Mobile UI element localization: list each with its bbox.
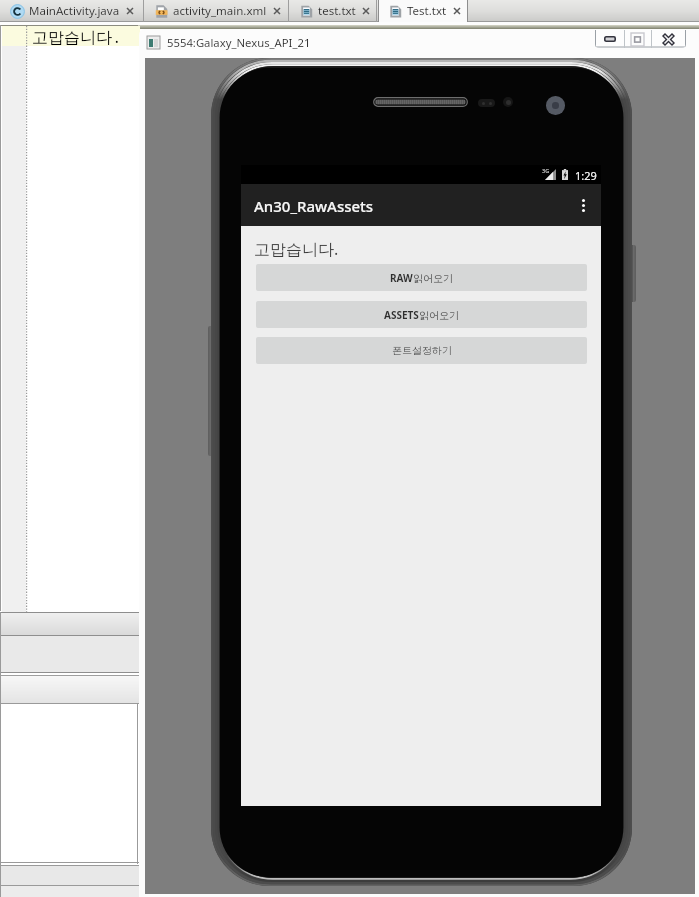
staticText: 고맙습니다. — [32, 26, 122, 48]
staticText: 1:29 — [575, 168, 597, 183]
button[interactable]: test.txt — [289, 0, 377, 22]
button[interactable]: RAW — [256, 264, 587, 291]
button[interactable]: MainActivity.java — [0, 0, 144, 22]
button[interactable]: Minimise — [595, 30, 624, 48]
staticText: 3G — [542, 167, 550, 174]
button[interactable]: More options — [565, 184, 601, 226]
staticText: 읽어오기 — [419, 309, 459, 322]
staticText: RAW — [390, 271, 413, 285]
button[interactable]: 폰트설정하기 — [256, 337, 587, 364]
button[interactable]: ASSETS — [256, 301, 587, 328]
staticText: ASSETS — [384, 308, 419, 322]
button[interactable]: Test.txt — [378, 0, 468, 22]
staticText: 폰트설정하기 — [392, 344, 452, 357]
staticText: 5554:Galaxy_Nexus_API_21 — [167, 35, 311, 50]
button[interactable]: Close — [651, 30, 686, 48]
staticText: activity_main.xml — [173, 3, 267, 19]
staticText: MainActivity.java — [29, 3, 120, 19]
staticText: An30_RawAssets — [254, 196, 374, 216]
staticText: 읽어오기 — [413, 272, 453, 285]
button[interactable]: activity_main.xml — [144, 0, 289, 22]
staticText: 고맙습니다. — [254, 238, 339, 260]
staticText: test.txt — [318, 3, 356, 19]
staticText: Test.txt — [407, 3, 447, 19]
button[interactable]: Maximise — [624, 30, 651, 48]
